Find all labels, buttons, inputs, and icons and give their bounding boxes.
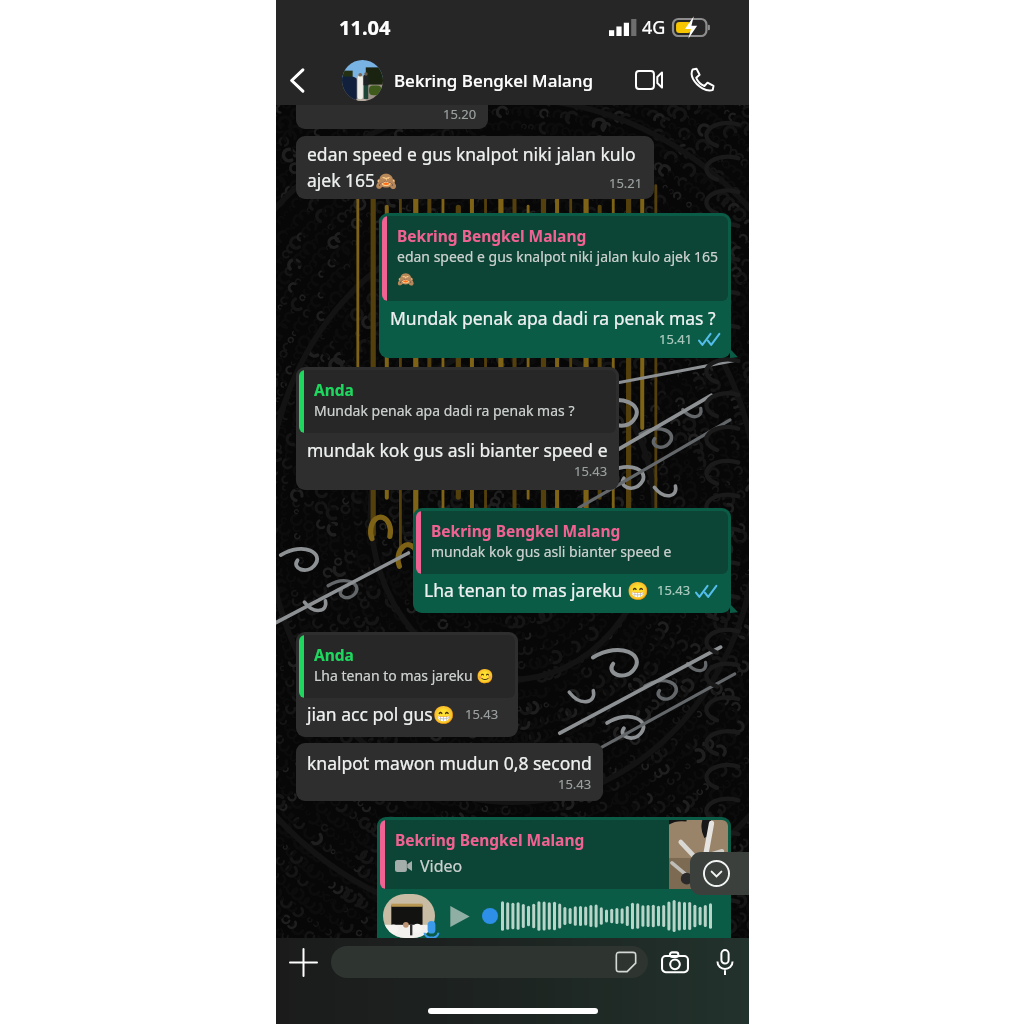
button[interactable]: Voice message (701, 938, 749, 986)
staticText: mundak kok gus asli bianter speed e (431, 542, 672, 561)
staticText: 15.21 (609, 174, 643, 192)
button[interactable]: Bekring Bengkel Malang (377, 817, 731, 938)
button[interactable]: Back (276, 55, 318, 105)
button[interactable]: Anda (296, 632, 518, 737)
staticText: Anda (314, 644, 354, 665)
staticText: Bekring Bengkel Malang (431, 520, 621, 541)
staticText: 15.41 (659, 330, 693, 348)
staticText: Mundak penak apa dadi ra penak mas ? (390, 306, 716, 330)
button[interactable]: Voice call (676, 55, 728, 105)
staticText: Bekring Bengkel Malang (394, 69, 593, 92)
staticText: Mundak penak apa dadi ra penak mas ? (314, 401, 575, 420)
button[interactable]: Bekring Bengkel Malang (379, 213, 731, 358)
staticText: 15.43 (465, 705, 499, 723)
button[interactable] (331, 946, 648, 978)
staticText: 11.04 (339, 14, 391, 41)
staticText: mundak kok gus asli bianter speed e (307, 438, 608, 462)
staticText: 15.20 (443, 105, 477, 123)
button[interactable]: Bekring Bengkel Malang (413, 508, 731, 613)
button[interactable]: knalpot mawon mudun 0,8 second (296, 743, 603, 801)
staticText: edan speed e gus knalpot niki jalan kulo… (307, 142, 643, 192)
button[interactable]: Bekring Bengkel Malang (318, 55, 621, 105)
staticText: Bekring Bengkel Malang (395, 829, 585, 850)
button[interactable]: Attach (276, 938, 331, 986)
button[interactable]: Scroll to bottom (690, 852, 749, 895)
staticText: 15.43 (558, 775, 592, 793)
staticText: 15.43 (657, 581, 691, 599)
button[interactable]: edan speed e gus knalpot niki jalan kulo… (296, 136, 654, 199)
staticText: 15.43 (574, 462, 608, 480)
staticText: Bekring Bengkel Malang (397, 225, 587, 246)
button[interactable]: 15.20 (296, 105, 488, 129)
staticText: 4G (642, 15, 666, 40)
button[interactable]: Anda (296, 367, 619, 490)
staticText: edan speed e gus knalpot niki jalan kulo… (397, 247, 720, 288)
staticText: jian acc pol gus😁 (307, 702, 455, 726)
staticText: Anda (314, 379, 354, 400)
button[interactable]: Video call (621, 55, 676, 105)
staticText: knalpot mawon mudun 0,8 second (307, 751, 592, 775)
staticText: Lha tenan to mas jareku 😊 (314, 666, 494, 685)
staticText: Video (420, 855, 463, 877)
button[interactable]: Camera (648, 938, 701, 986)
staticText: Lha tenan to mas jareku 😁 (424, 578, 649, 602)
